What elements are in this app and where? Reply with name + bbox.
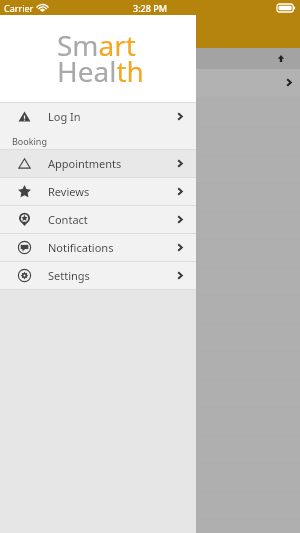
- staticText: Settings: [48, 268, 90, 283]
- staticText: 3:28 PM: [133, 2, 167, 14]
- button[interactable]: Notifications: [0, 234, 196, 261]
- staticText: Reviews: [48, 184, 90, 199]
- staticText: Log In: [48, 109, 81, 124]
- button[interactable]: Reviews: [0, 178, 196, 205]
- button[interactable]: Appointments: [0, 150, 196, 177]
- button[interactable]: Log In: [0, 103, 196, 130]
- staticText: Notifications: [48, 240, 114, 255]
- staticText: Health: [57, 52, 144, 90]
- staticText: Booking: [12, 135, 47, 147]
- button[interactable]: Settings: [0, 262, 196, 289]
- staticText: Contact: [48, 212, 88, 227]
- button[interactable]: Contact: [0, 206, 196, 233]
- staticText: Appointments: [48, 156, 122, 171]
- staticText: Smart: [57, 26, 136, 64]
- staticText: Carrier: [4, 2, 34, 14]
